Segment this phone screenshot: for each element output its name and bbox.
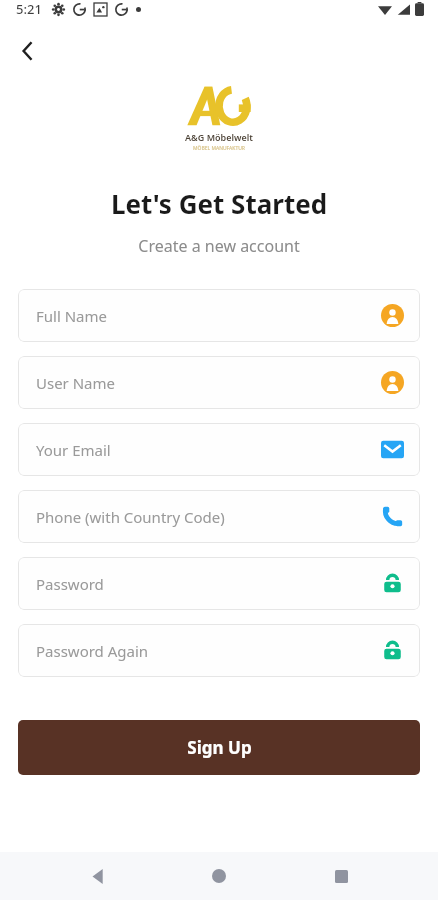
button[interactable]: Password: [18, 557, 420, 610]
button[interactable]: Recents: [317, 852, 365, 900]
button[interactable]: User Name: [18, 356, 420, 409]
staticText: Phone (with Country Code): [36, 507, 381, 527]
staticText: Let's Get Started: [0, 186, 438, 221]
button[interactable]: Home: [195, 852, 243, 900]
button[interactable]: Back: [74, 852, 122, 900]
staticText: User Name: [36, 373, 381, 393]
staticText: Password: [36, 574, 381, 594]
staticText: Sign Up: [187, 736, 252, 759]
staticText: Your Email: [36, 440, 381, 460]
button[interactable]: Your Email: [18, 423, 420, 476]
button[interactable]: Phone (with Country Code): [18, 490, 420, 543]
staticText: Create a new account: [0, 235, 438, 257]
staticText: Password Again: [36, 641, 381, 661]
button[interactable]: Back: [8, 31, 48, 71]
button[interactable]: Sign Up: [18, 720, 420, 775]
staticText: 5:21: [16, 0, 42, 18]
staticText: MÖBEL MANUFAKTUR: [193, 145, 245, 152]
staticText: Full Name: [36, 306, 381, 326]
button[interactable]: Full Name: [18, 289, 420, 342]
staticText: A&G Möbelwelt: [185, 131, 253, 143]
button[interactable]: Password Again: [18, 624, 420, 677]
